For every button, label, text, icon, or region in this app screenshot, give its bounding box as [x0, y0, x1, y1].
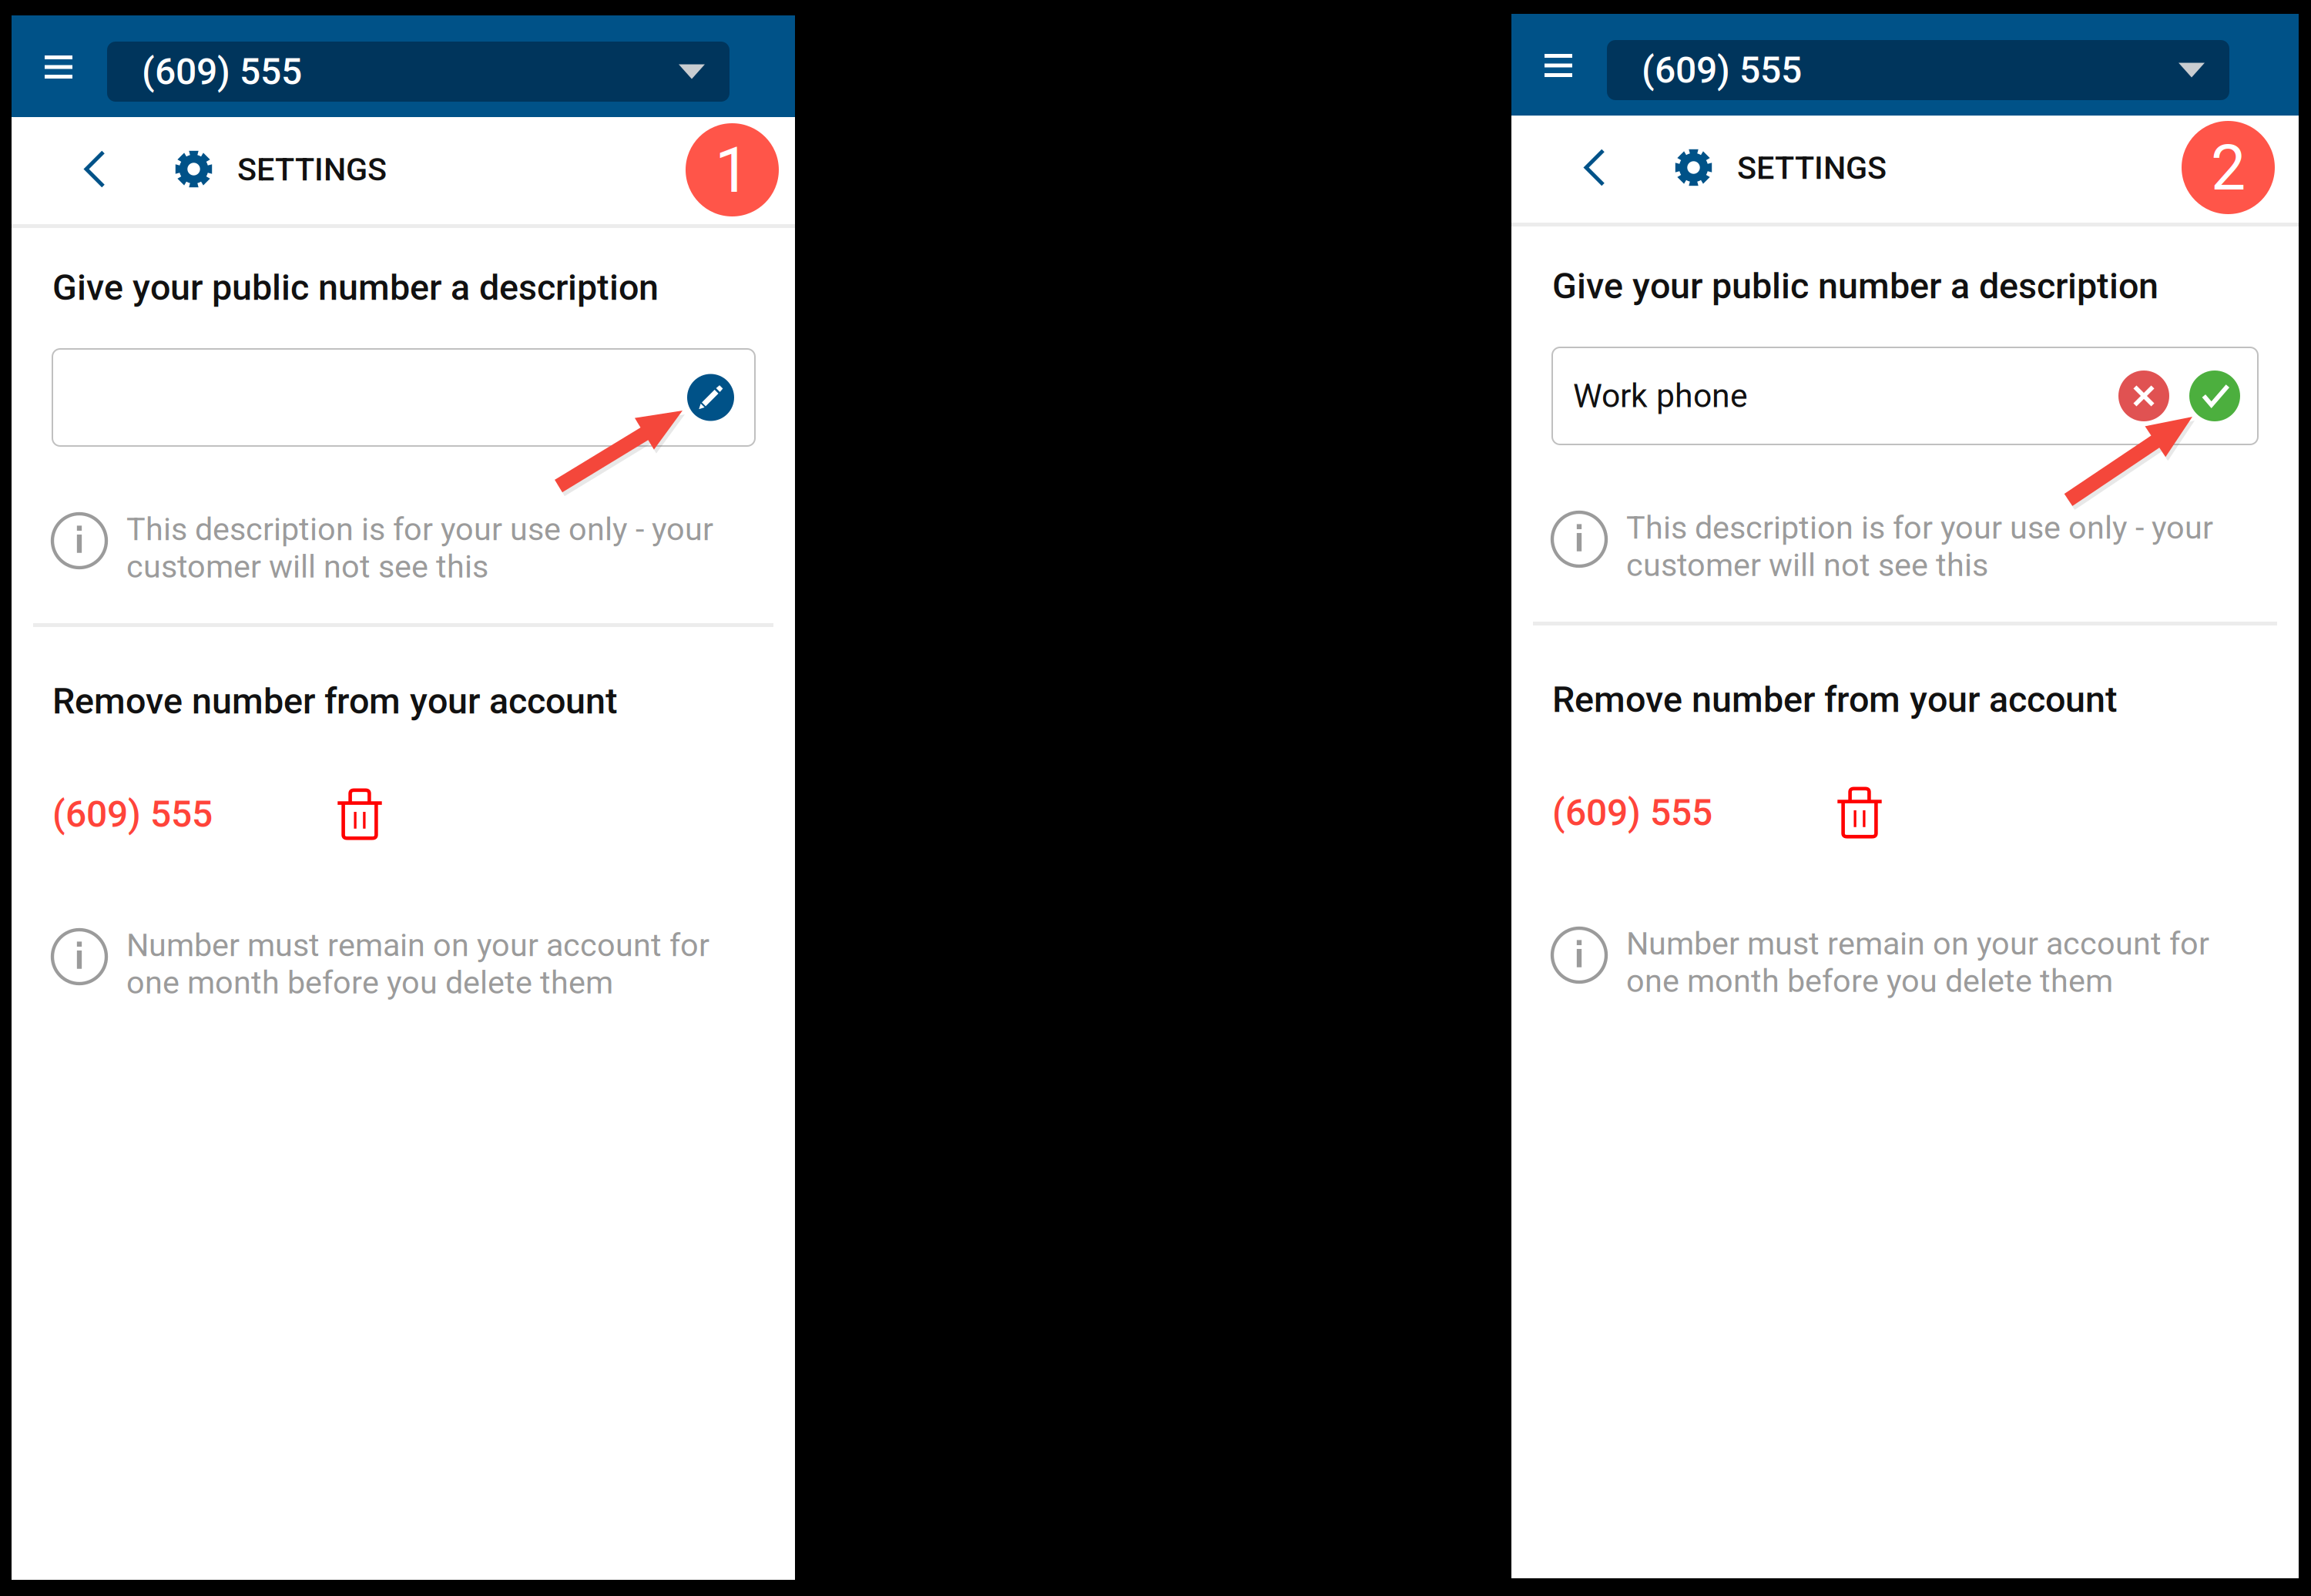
button[interactable]: Confirm [2189, 370, 2240, 421]
staticText: Work phone [1573, 377, 1748, 415]
button[interactable]: (609) 555 [107, 42, 730, 102]
button[interactable]: Clear [2118, 370, 2169, 421]
staticText: 2 [2211, 132, 2246, 205]
button[interactable]: Menu [1518, 15, 1598, 116]
button[interactable]: (609) 555 [52, 793, 213, 836]
staticText: Remove number from your account [1552, 679, 2118, 721]
button[interactable]: Delete number [1821, 783, 1898, 843]
button[interactable]: (609) 555 [1552, 791, 1712, 834]
staticText: This description is for your use only - … [1626, 509, 2213, 584]
button[interactable]: Back [1556, 114, 1633, 221]
staticText: (609) 555 [142, 50, 302, 93]
staticText: This description is for your use only - … [126, 511, 713, 585]
staticText: (609) 555 [52, 793, 213, 836]
button[interactable]: Edit description [687, 374, 734, 421]
staticText: Number must remain on your account for o… [1626, 925, 2209, 1000]
staticText: SETTINGS [237, 151, 387, 188]
staticText: 1 [715, 134, 750, 207]
staticText: Give your public number a description [52, 267, 659, 309]
staticText: SETTINGS [1737, 149, 1887, 187]
staticText: (609) 555 [1642, 48, 1802, 92]
staticText: Give your public number a description [1552, 265, 2158, 307]
button[interactable]: Delete number [321, 784, 398, 844]
button[interactable]: Back [56, 116, 133, 223]
button[interactable]: Menu [18, 16, 99, 118]
staticText: (609) 555 [1552, 791, 1712, 834]
staticText: Remove number from your account [52, 680, 618, 722]
button[interactable]: (609) 555 [1607, 40, 2229, 100]
staticText: Number must remain on your account for o… [126, 927, 709, 1001]
